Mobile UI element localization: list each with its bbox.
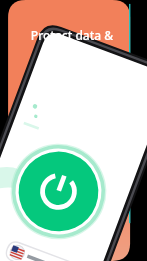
button[interactable]: Protect data & privacy <box>10 27 134 58</box>
button[interactable]: Connect VPN <box>36 140 82 186</box>
